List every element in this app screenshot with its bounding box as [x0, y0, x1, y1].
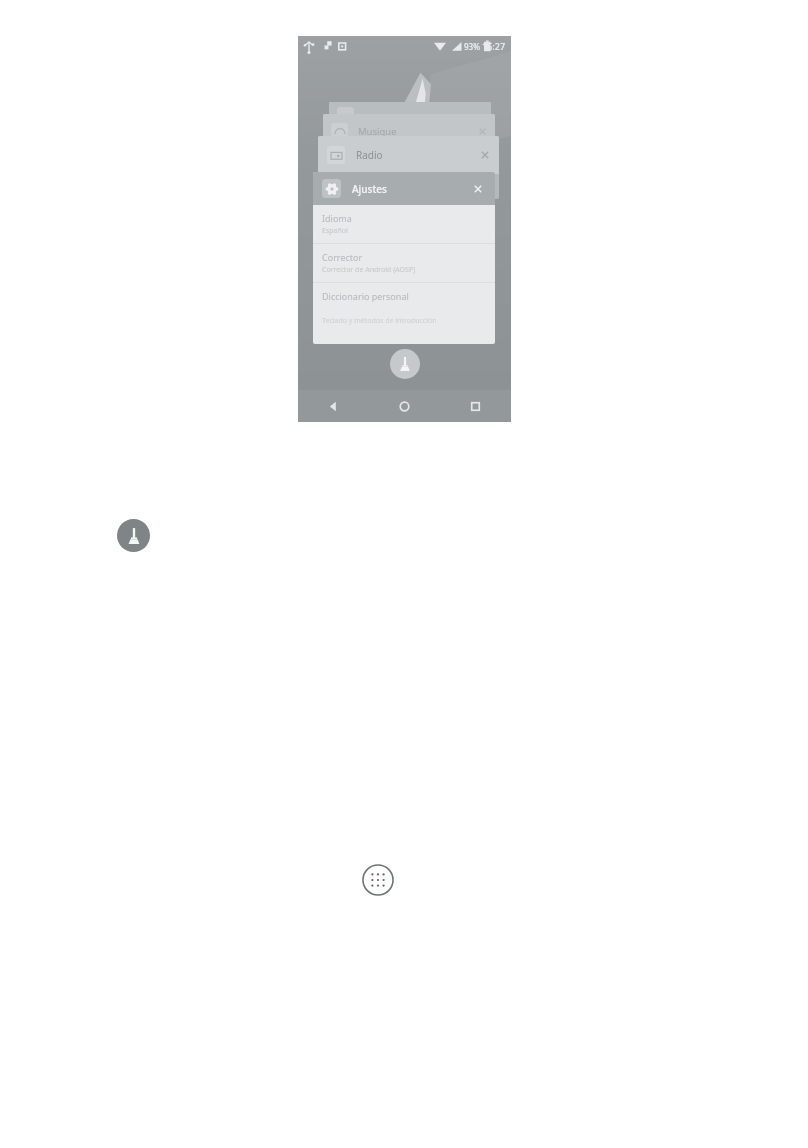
- staticText: Radio: [356, 148, 383, 162]
- button[interactable]: Clear all: [390, 349, 420, 379]
- button[interactable]: Corrector: [313, 244, 495, 282]
- staticText: Ajustes: [352, 182, 387, 196]
- staticText: Corrector de Android (AOSP): [322, 265, 416, 275]
- button[interactable]: Musique: [323, 114, 495, 164]
- button[interactable]: Clear all recent apps: [117, 519, 150, 552]
- staticText: Idioma: [322, 212, 352, 224]
- button[interactable]: Home: [369, 390, 440, 422]
- staticText: Corrector: [322, 251, 363, 263]
- button[interactable]: Ajustes: [313, 172, 495, 205]
- button[interactable]: Radio: [318, 136, 499, 199]
- staticText: 93%: [464, 41, 480, 52]
- button[interactable]: Idioma: [313, 205, 495, 243]
- staticText: 16:27: [482, 40, 506, 52]
- button[interactable]: Recents: [440, 390, 511, 422]
- staticText: Musique: [358, 125, 397, 138]
- staticText: Teclado y métodos de introducción: [322, 316, 437, 326]
- button[interactable]: Diccionario personal: [313, 283, 495, 309]
- button[interactable]: Close Ajustes: [470, 181, 486, 197]
- button[interactable]: All apps: [362, 864, 394, 896]
- staticText: Español: [322, 226, 348, 236]
- button[interactable]: Back: [298, 390, 369, 422]
- button[interactable]: [329, 102, 491, 148]
- staticText: Diccionario personal: [322, 290, 409, 302]
